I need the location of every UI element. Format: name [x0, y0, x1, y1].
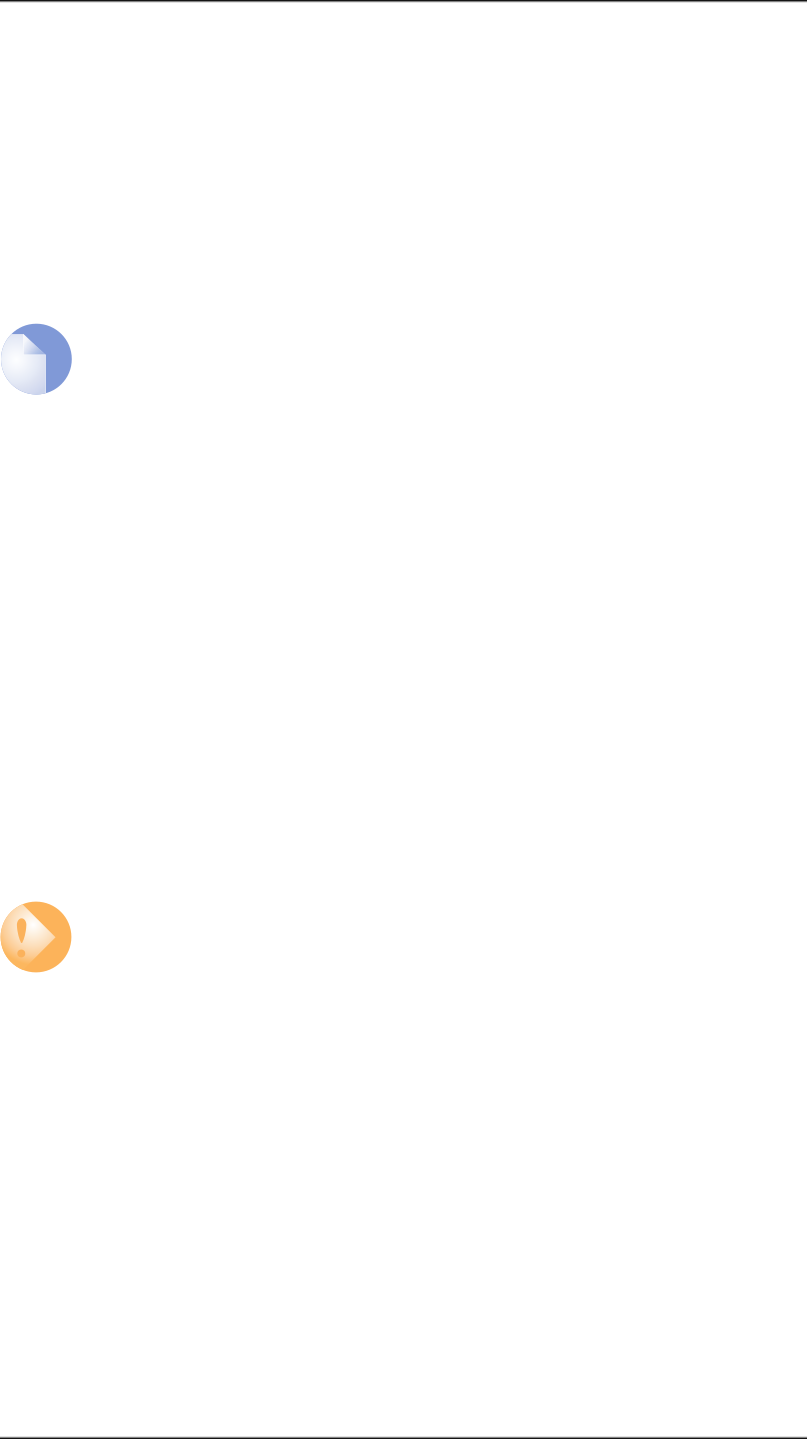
button[interactable]: Image failed to load	[1, 324, 72, 394]
button[interactable]: Image failed to load – warning	[1, 902, 71, 972]
